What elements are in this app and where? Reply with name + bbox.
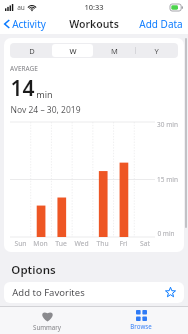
button[interactable]: Summary — [0, 307, 94, 334]
staticText: Options — [11, 262, 56, 278]
button[interactable]: Y — [135, 44, 177, 57]
staticText: D — [29, 46, 35, 56]
staticText: Tue — [55, 239, 67, 248]
staticText: Add to Favorites — [12, 286, 85, 299]
staticText: Browse — [130, 322, 152, 330]
button[interactable]: Browse — [94, 307, 188, 334]
staticText: Activity — [12, 17, 46, 31]
button[interactable]: M — [93, 44, 135, 57]
staticText: Mon — [33, 239, 48, 248]
button[interactable]: Activity — [0, 15, 52, 33]
staticText: W — [69, 46, 77, 56]
staticText: Nov 24 – 30, 2019 — [10, 104, 81, 116]
staticText: Sun — [14, 239, 27, 248]
staticText: 10:33 — [84, 2, 104, 12]
staticText: 0 min — [157, 229, 175, 238]
staticText: 14 — [10, 74, 35, 103]
staticText: 30 min — [157, 120, 178, 129]
other: Add to Favorites — [165, 287, 176, 298]
staticText: Add Data — [139, 17, 183, 31]
staticText: Y — [154, 46, 159, 56]
staticText: Sat — [140, 239, 150, 248]
staticText: Fri — [119, 239, 128, 248]
staticText: min — [36, 88, 53, 100]
button[interactable]: Add to Favorites — [4, 282, 184, 303]
staticText: 15 min — [157, 175, 178, 184]
button[interactable]: Add Data — [134, 15, 188, 33]
staticText: Summary — [33, 323, 61, 331]
staticText: Workouts — [69, 17, 119, 31]
button[interactable]: D — [11, 44, 52, 57]
staticText: AVERAGE — [10, 64, 38, 73]
button[interactable]: W — [52, 44, 93, 57]
staticText: Thu — [96, 239, 109, 248]
staticText: M — [111, 46, 118, 56]
staticText: Wed — [74, 239, 89, 248]
staticText: au — [17, 3, 25, 12]
